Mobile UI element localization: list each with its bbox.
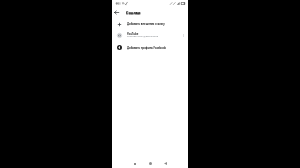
button[interactable]: YouTube [112, 29, 188, 41]
staticText: YouTube [127, 32, 139, 36]
button[interactable]: Добавить профиль Facebook [112, 41, 188, 53]
button[interactable]: More options [178, 29, 188, 41]
staticText: Ссылки [126, 11, 141, 16]
button[interactable]: Back [160, 159, 170, 168]
staticText: YouTube [127, 32, 139, 36]
button[interactable]: Home [145, 159, 155, 168]
staticText: Добавить внешнюю ссылку [127, 22, 165, 26]
staticText: Добавить профиль Facebook [127, 46, 167, 50]
staticText: Ссылки [126, 10, 141, 15]
button[interactable]: Recent apps [130, 159, 140, 168]
button[interactable]: Добавить внешнюю ссылку [112, 18, 188, 30]
button[interactable]: Back [112, 8, 121, 17]
staticText: Добавить внешнюю ссылку [127, 22, 165, 26]
staticText: Добавить профиль Facebook [127, 46, 167, 50]
staticText: youtube.com/@apolinariia [127, 34, 159, 37]
staticText: Ссылки [126, 10, 141, 15]
